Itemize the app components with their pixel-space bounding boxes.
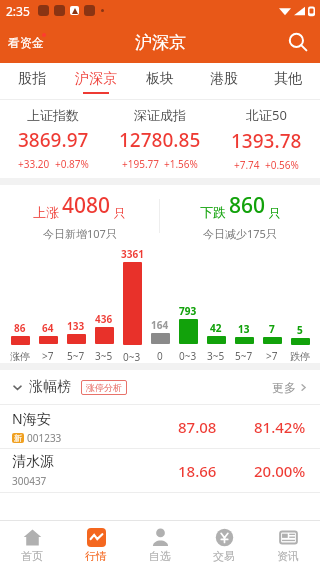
staticText: 86 — [14, 321, 26, 335]
staticText: 板块 — [146, 70, 174, 88]
staticText: 跌停 — [290, 350, 310, 363]
staticText: 资讯 — [277, 549, 299, 563]
staticText: 3~5 — [207, 349, 225, 363]
staticText: 港股 — [210, 70, 238, 88]
staticText: 20.00% — [254, 461, 306, 481]
staticText: 436 — [95, 312, 113, 326]
staticText: 北证50 — [246, 106, 287, 124]
button[interactable]: 交易 — [192, 521, 256, 569]
button[interactable]: 上涨 — [0, 191, 159, 241]
staticText: 自选 — [149, 549, 171, 563]
staticText: +1.56% — [164, 157, 198, 171]
button[interactable]: 看资金 — [0, 29, 52, 56]
button[interactable]: 自选 — [128, 521, 192, 569]
staticText: 沪深京 — [75, 70, 117, 88]
staticText: 沪深京 — [135, 32, 186, 53]
button[interactable]: 深证成指 — [106, 107, 213, 171]
staticText: 5~7 — [235, 349, 253, 363]
button[interactable]: 3361 — [118, 247, 146, 363]
staticText: 涨停 — [10, 350, 30, 363]
staticText: 1393.78 — [231, 128, 302, 154]
button[interactable]: 资讯 — [256, 521, 320, 569]
staticText: N海安 — [12, 409, 51, 428]
staticText: 13 — [238, 322, 250, 336]
button[interactable]: 436 — [90, 312, 118, 363]
button[interactable]: 上证指数 — [0, 107, 106, 171]
staticText: 42 — [210, 321, 222, 335]
staticText: 行情 — [85, 549, 107, 563]
staticText: 64 — [42, 321, 54, 335]
button[interactable]: 行情 — [64, 521, 128, 569]
button[interactable]: Search — [276, 24, 320, 60]
staticText: 0 — [157, 349, 163, 363]
button[interactable]: 清水源 — [0, 449, 320, 492]
staticText: +33.20 — [18, 157, 50, 171]
staticText: 清水源 — [12, 453, 54, 471]
staticText: 87.08 — [178, 417, 217, 437]
staticText: +0.87% — [55, 157, 89, 171]
button[interactable]: 股指 — [0, 63, 64, 100]
button[interactable]: 164 — [146, 318, 174, 363]
staticText: 3361 — [121, 247, 144, 261]
staticText: 860 — [229, 191, 266, 220]
button[interactable]: 其他 — [256, 63, 320, 100]
staticText: 涨停分析 — [86, 382, 122, 393]
button[interactable]: 首页 — [0, 521, 64, 569]
staticText: 下跌 — [200, 204, 226, 220]
button[interactable]: 更多 — [272, 380, 308, 395]
staticText: 上涨 — [33, 204, 59, 220]
staticText: 首页 — [21, 549, 43, 563]
staticText: 81.42% — [254, 417, 306, 437]
button[interactable]: 北证50 — [213, 106, 320, 172]
staticText: 今日减少175只 — [203, 226, 277, 241]
staticText: 只 — [269, 205, 281, 220]
staticText: 0~3 — [123, 350, 141, 363]
staticText: 133 — [67, 319, 85, 333]
button[interactable]: 86 — [6, 321, 34, 363]
button[interactable]: 板块 — [128, 63, 192, 100]
staticText: 18.66 — [178, 461, 217, 481]
staticText: 5 — [297, 323, 303, 337]
staticText: +7.74 — [234, 158, 260, 172]
button[interactable]: 涨幅榜 — [12, 378, 71, 396]
staticText: 其他 — [274, 70, 302, 88]
staticText: 793 — [179, 304, 197, 318]
staticText: 涨幅榜 — [29, 378, 71, 396]
staticText: 001233 — [27, 431, 62, 445]
button[interactable]: 港股 — [192, 63, 256, 100]
staticText: >7 — [42, 349, 54, 363]
staticText: +195.77 — [122, 157, 159, 171]
staticText: 7 — [269, 322, 275, 336]
staticText: 12780.85 — [119, 127, 201, 153]
staticText: 新 — [14, 433, 22, 443]
staticText: 300437 — [12, 474, 47, 488]
button[interactable]: 13 — [230, 322, 258, 363]
staticText: 更多 — [272, 380, 296, 395]
staticText: 股指 — [18, 70, 46, 88]
staticText: 164 — [151, 318, 169, 332]
staticText: 2:35 — [6, 3, 30, 19]
staticText: 5~7 — [67, 349, 85, 363]
staticText: 0~3 — [179, 349, 197, 363]
button[interactable]: 133 — [62, 319, 90, 363]
button[interactable]: 64 — [34, 321, 62, 363]
staticText: 看资金 — [8, 35, 44, 50]
button[interactable]: 7 — [258, 322, 286, 363]
staticText: 深证成指 — [134, 107, 186, 123]
button[interactable]: 涨停分析 — [81, 380, 127, 395]
button[interactable]: 下跌 — [160, 191, 320, 241]
staticText: 交易 — [213, 549, 235, 563]
button[interactable]: 42 — [202, 321, 230, 363]
button[interactable]: 793 — [174, 304, 202, 363]
staticText: 今日新增107只 — [43, 226, 117, 241]
button[interactable]: 5 — [286, 323, 314, 363]
button[interactable]: 沪深京 — [64, 63, 128, 100]
staticText: >7 — [266, 349, 278, 363]
button[interactable]: N海安 — [0, 405, 320, 448]
staticText: 上证指数 — [27, 107, 79, 123]
staticText: 只 — [114, 205, 126, 220]
staticText: 4080 — [62, 191, 111, 220]
staticText: +0.56% — [265, 158, 299, 172]
staticText: 3869.97 — [18, 127, 89, 153]
staticText: 3~5 — [95, 349, 113, 363]
